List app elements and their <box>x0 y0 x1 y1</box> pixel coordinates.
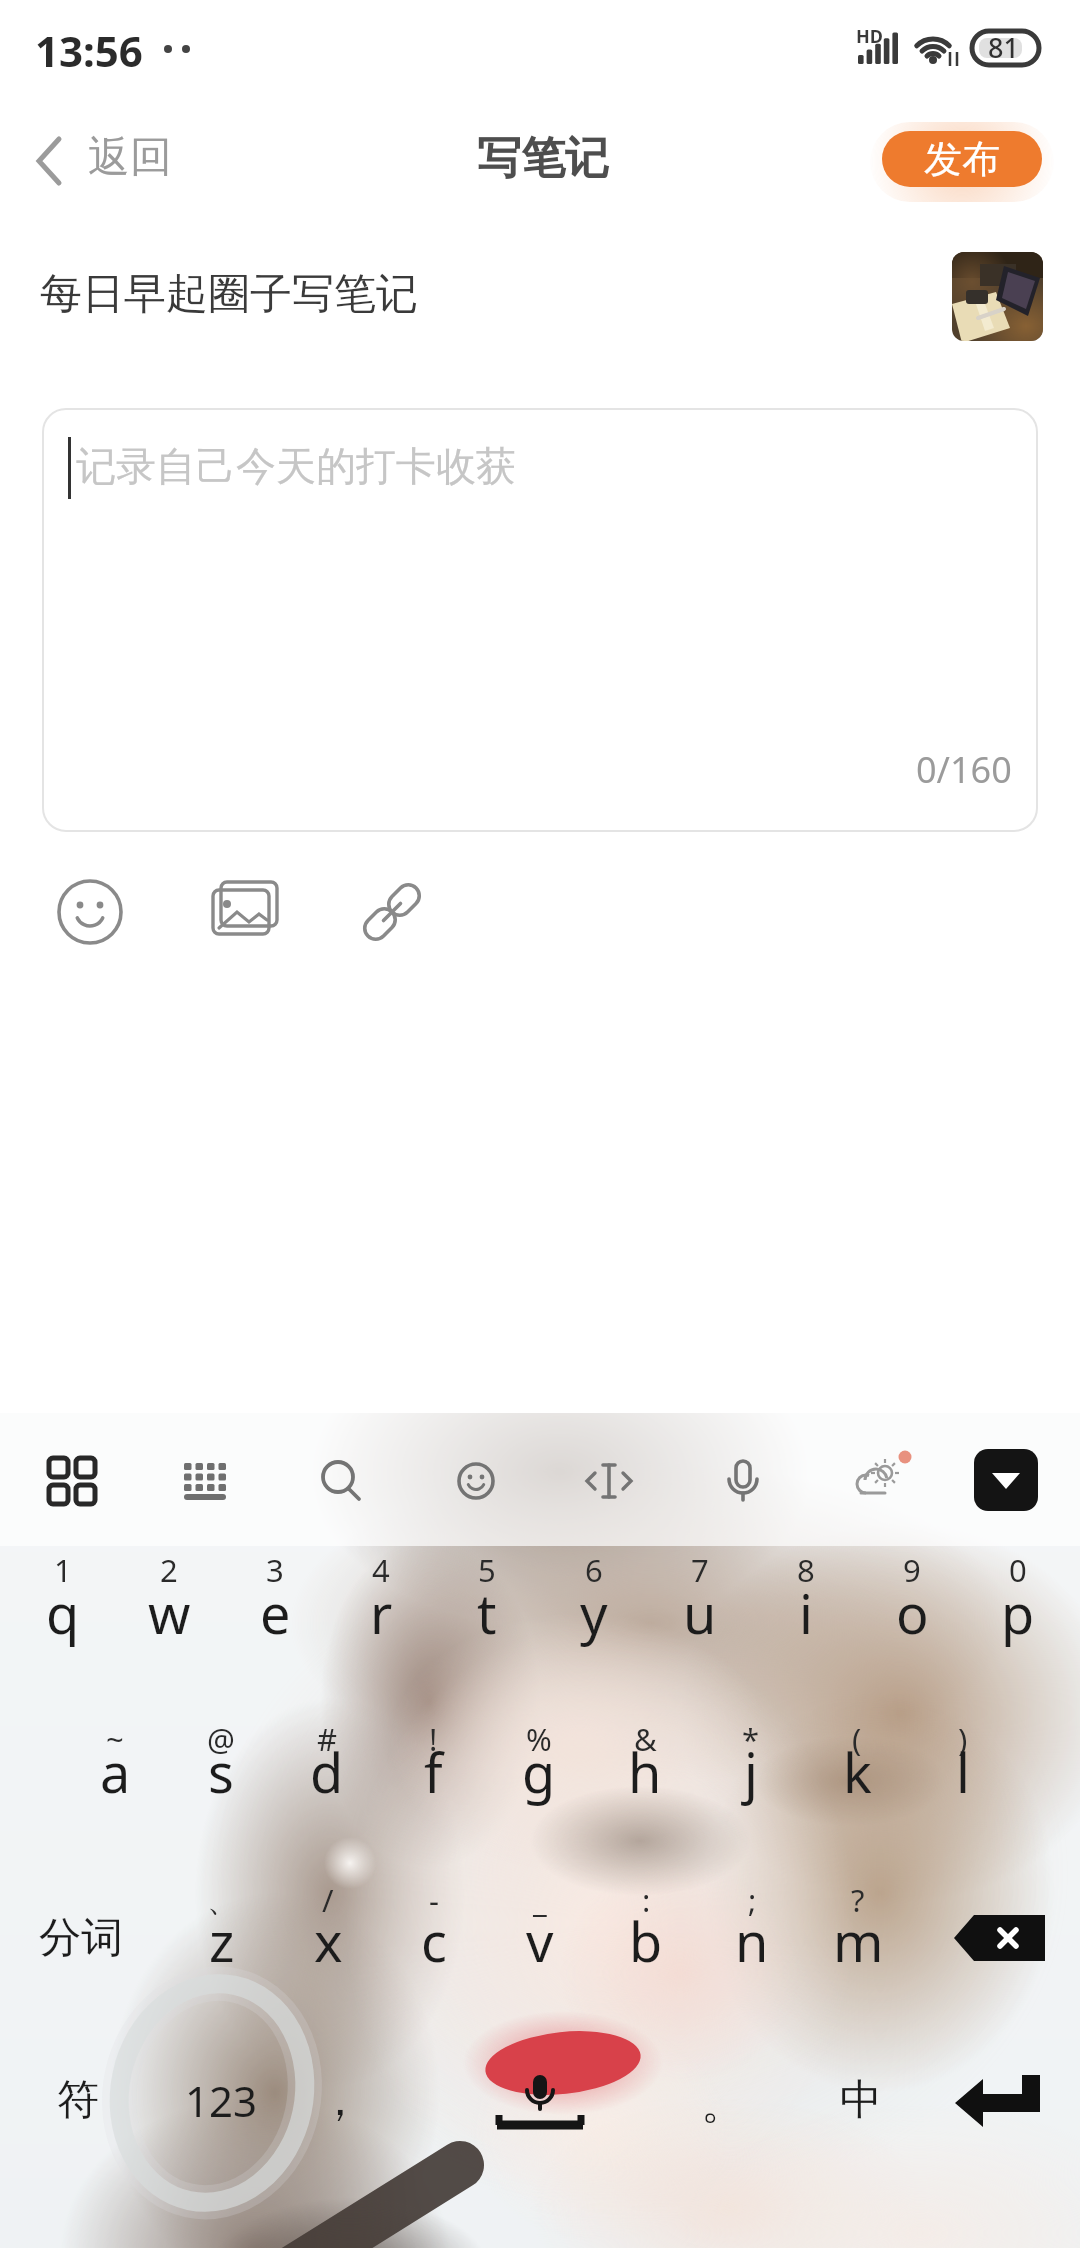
staticText: w <box>148 1576 191 1650</box>
button[interactable]: w <box>119 1573 219 1653</box>
staticText: & <box>634 1718 657 1760</box>
button[interactable]: m <box>808 1901 908 1981</box>
button[interactable]: 记录自己今天的打卡收获 <box>42 408 1038 832</box>
button[interactable] <box>944 1908 1060 1974</box>
staticText: 13:56 <box>35 22 143 79</box>
staticText: 7 <box>691 1549 709 1591</box>
staticText: q <box>46 1576 80 1650</box>
button[interactable]: 符 <box>18 2050 138 2150</box>
button[interactable]: 。 <box>668 2053 778 2153</box>
staticText: h <box>628 1735 662 1809</box>
button[interactable]: e <box>225 1573 325 1653</box>
button[interactable] <box>174 1449 238 1513</box>
button[interactable] <box>40 1449 104 1513</box>
button[interactable]: f <box>383 1732 483 1812</box>
staticText: _ <box>533 1879 547 1921</box>
staticText: - <box>429 1879 439 1921</box>
button[interactable]: v <box>490 1901 590 1981</box>
button[interactable]: j <box>701 1732 801 1812</box>
staticText: ( <box>852 1718 862 1760</box>
staticText: 中 <box>840 2074 882 2127</box>
button[interactable] <box>845 1449 909 1513</box>
staticText: HD <box>856 24 883 49</box>
staticText: z <box>209 1904 235 1978</box>
staticText: 返回 <box>88 131 172 184</box>
button[interactable]: 分词 <box>6 1893 156 1983</box>
button[interactable]: 123 <box>156 2050 286 2150</box>
button[interactable]: y <box>544 1573 644 1653</box>
button[interactable]: s <box>171 1732 271 1812</box>
staticText: j <box>744 1735 758 1809</box>
staticText: 9 <box>903 1549 921 1591</box>
button[interactable]: z <box>172 1901 272 1981</box>
staticText: 、 <box>207 1881 238 1920</box>
staticText: m <box>833 1904 884 1978</box>
button[interactable] <box>945 2063 1055 2143</box>
button[interactable]: d <box>277 1732 377 1812</box>
button[interactable]: i <box>756 1573 856 1653</box>
staticText: 每日早起圈子写笔记 <box>40 268 418 321</box>
button[interactable]: u <box>650 1573 750 1653</box>
staticText: 81 <box>988 29 1019 66</box>
button[interactable] <box>309 1449 373 1513</box>
staticText: ~ <box>106 1718 124 1760</box>
staticText: 2 <box>160 1549 178 1591</box>
staticText: * <box>742 1718 760 1760</box>
staticText: / <box>322 1879 334 1921</box>
button[interactable]: p <box>968 1573 1068 1653</box>
staticText: 3 <box>266 1549 284 1591</box>
staticText: 。 <box>701 2076 745 2131</box>
staticText: 分词 <box>39 1912 123 1965</box>
button[interactable]: n <box>702 1901 802 1981</box>
staticText: k <box>843 1735 872 1809</box>
button[interactable] <box>444 1449 508 1513</box>
staticText: ! <box>429 1718 438 1760</box>
staticText: 8 <box>797 1549 815 1591</box>
staticText: 写笔记 <box>477 131 609 186</box>
button[interactable] <box>203 870 287 954</box>
button[interactable]: ， <box>285 2050 395 2150</box>
button[interactable]: a <box>65 1732 165 1812</box>
button[interactable]: 返回 <box>20 125 190 195</box>
staticText: f <box>424 1735 443 1809</box>
button[interactable]: t <box>437 1573 537 1653</box>
staticText: d <box>310 1735 344 1809</box>
button[interactable]: 发布 <box>882 131 1042 187</box>
staticText: u <box>683 1576 717 1650</box>
button[interactable]: r <box>331 1573 431 1653</box>
button[interactable] <box>460 2053 620 2153</box>
button[interactable]: l <box>913 1732 1013 1812</box>
staticText: g <box>522 1735 556 1809</box>
staticText: : <box>642 1879 651 1921</box>
button[interactable]: x <box>278 1901 378 1981</box>
button[interactable]: 中 <box>801 2050 921 2150</box>
staticText: r <box>370 1576 393 1650</box>
button[interactable]: o <box>862 1573 962 1653</box>
staticText: o <box>896 1576 929 1650</box>
staticText: s <box>208 1735 234 1809</box>
button[interactable]: k <box>807 1732 907 1812</box>
button[interactable] <box>350 870 434 954</box>
staticText: l <box>956 1735 970 1809</box>
button[interactable] <box>711 1449 775 1513</box>
button[interactable] <box>48 870 132 954</box>
staticText: y <box>580 1576 608 1650</box>
staticText: 发布 <box>924 135 1000 183</box>
button[interactable]: h <box>595 1732 695 1812</box>
staticText: # <box>317 1718 338 1760</box>
staticText: a <box>100 1735 131 1809</box>
staticText: p <box>1001 1576 1035 1650</box>
button[interactable] <box>577 1449 641 1513</box>
button[interactable]: b <box>596 1901 696 1981</box>
staticText: 4 <box>372 1549 390 1591</box>
button[interactable]: q <box>13 1573 113 1653</box>
staticText: 5 <box>478 1549 496 1591</box>
staticText: ) <box>958 1718 968 1760</box>
button[interactable]: c <box>384 1901 484 1981</box>
button[interactable] <box>952 252 1043 341</box>
button[interactable]: g <box>489 1732 589 1812</box>
staticText: c <box>421 1904 447 1978</box>
button[interactable] <box>974 1449 1038 1511</box>
staticText: @ <box>207 1718 235 1760</box>
staticText: 6 <box>585 1549 603 1591</box>
